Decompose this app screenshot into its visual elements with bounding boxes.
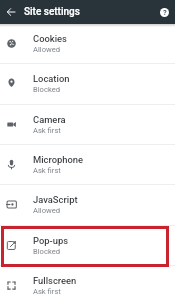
staticText: JavaScript — [33, 194, 78, 205]
staticText: Microphone — [33, 154, 84, 165]
staticText: Cookies — [33, 33, 67, 44]
staticText: Fullscreen — [33, 275, 77, 286]
staticText: Location — [33, 73, 70, 84]
button[interactable]: Camera — [0, 105, 175, 144]
staticText: Camera — [33, 114, 66, 125]
button[interactable]: Help — [154, 0, 175, 24]
staticText: Ask first — [33, 166, 61, 175]
button[interactable]: Location — [0, 64, 175, 103]
button[interactable]: Pop-ups — [0, 226, 175, 265]
button[interactable]: JavaScript — [0, 185, 175, 224]
staticText: Allowed — [33, 206, 60, 215]
staticText: Ask first — [33, 126, 61, 135]
staticText: ? — [163, 8, 167, 17]
staticText: Allowed — [33, 45, 60, 54]
button[interactable]: Navigate up — [0, 0, 21, 24]
staticText: Pop-ups — [33, 235, 69, 246]
button[interactable]: Microphone — [0, 145, 175, 184]
staticText: Blocked — [33, 247, 60, 256]
button[interactable]: Cookies — [0, 24, 175, 63]
button[interactable]: Fullscreen — [0, 266, 175, 300]
staticText: Ask first — [33, 287, 61, 296]
staticText: Site settings — [24, 6, 80, 18]
staticText: Blocked — [33, 85, 60, 94]
